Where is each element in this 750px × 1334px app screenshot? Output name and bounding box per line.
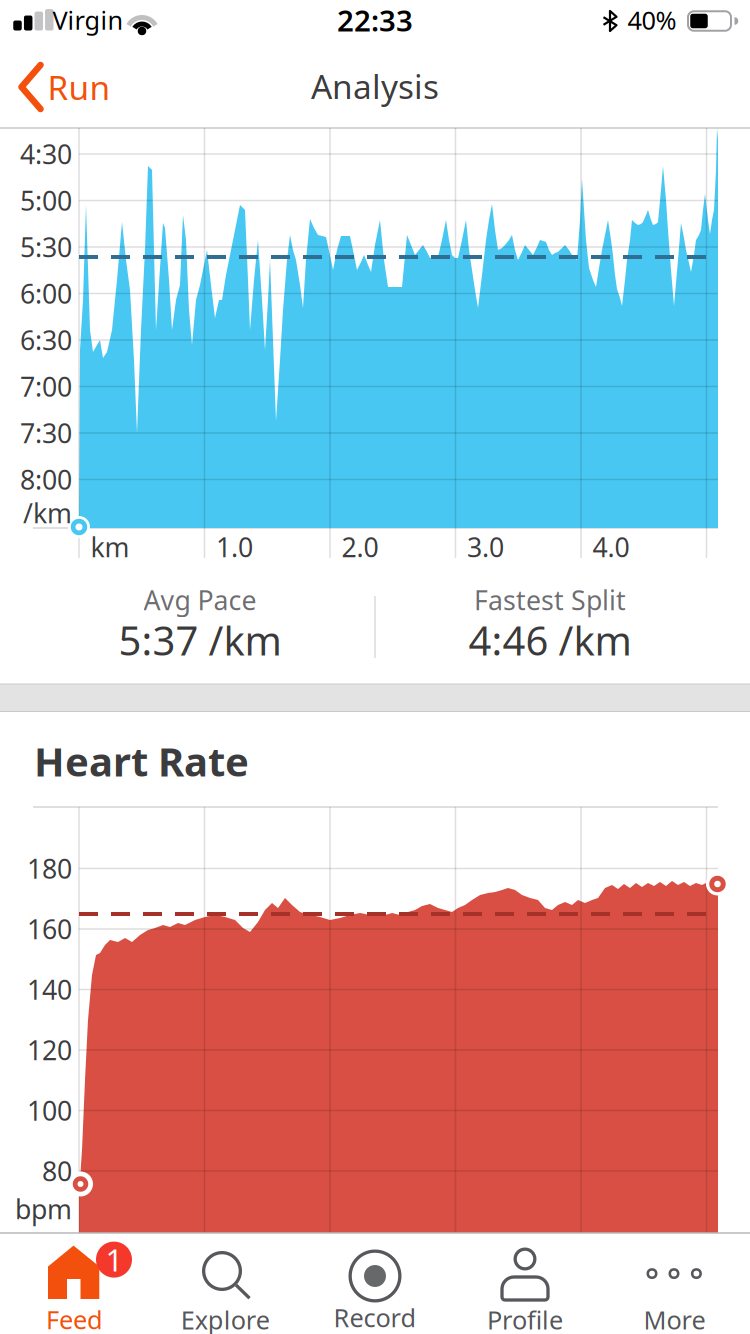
staticText: 22:33: [337, 0, 413, 39]
staticText: 6:00: [20, 276, 72, 311]
staticText: km: [90, 529, 129, 565]
staticText: 8:00: [20, 462, 72, 497]
staticText: 6:30: [20, 322, 72, 358]
staticText: Record: [333, 1301, 416, 1334]
staticText: 120: [27, 1032, 72, 1068]
staticText: 80: [42, 1153, 72, 1189]
staticText: Run: [47, 65, 110, 109]
staticText: Fastest Split: [474, 582, 626, 618]
staticText: bpm: [15, 1191, 72, 1227]
staticText: More: [644, 1303, 706, 1334]
staticText: Feed: [46, 1303, 103, 1334]
staticText: Avg Pace: [143, 582, 256, 618]
staticText: 4:30: [20, 136, 72, 172]
staticText: Heart Rate: [34, 734, 249, 787]
staticText: 1: [105, 1239, 123, 1280]
staticText: 5:30: [20, 229, 72, 265]
staticText: 4.0: [592, 529, 629, 565]
staticText: 40%: [627, 3, 676, 37]
staticText: Virgin: [52, 3, 123, 37]
staticText: 3.0: [467, 529, 504, 565]
staticText: 5:00: [20, 183, 72, 218]
staticText: 140: [27, 972, 72, 1007]
button[interactable]: 1: [0, 1233, 150, 1334]
staticText: 5:37 /km: [118, 613, 281, 666]
staticText: 7:30: [20, 415, 72, 451]
button[interactable]: Explore: [150, 1233, 300, 1334]
staticText: 1.0: [216, 529, 253, 565]
staticText: 160: [27, 911, 72, 947]
staticText: 180: [27, 851, 72, 886]
button[interactable]: Record: [300, 1233, 450, 1334]
staticText: 100: [27, 1093, 72, 1128]
staticText: 7:00: [20, 369, 72, 404]
staticText: Analysis: [311, 64, 439, 108]
staticText: 2.0: [341, 529, 378, 565]
button[interactable]: Run: [14, 52, 134, 122]
button[interactable]: More: [600, 1233, 750, 1334]
button[interactable]: Profile: [450, 1233, 600, 1334]
staticText: 4:46 /km: [468, 613, 631, 666]
staticText: /km: [23, 495, 72, 531]
staticText: Profile: [487, 1303, 563, 1334]
staticText: Explore: [181, 1303, 270, 1334]
